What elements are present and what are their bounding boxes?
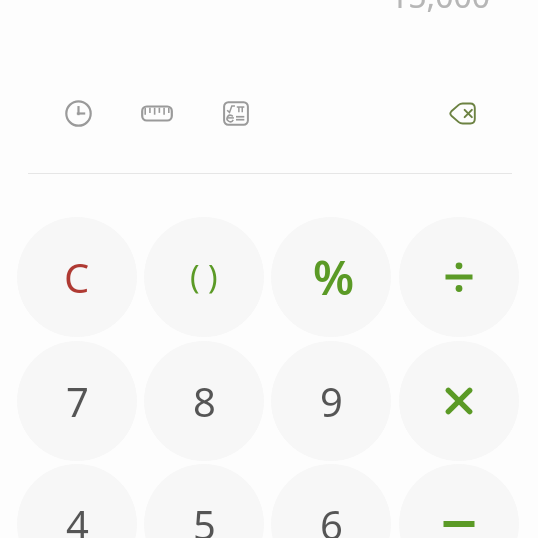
button[interactable]: C <box>17 217 137 337</box>
staticText: % <box>313 245 355 309</box>
button[interactable]: % <box>271 217 391 337</box>
staticText: 9 <box>320 374 343 428</box>
button[interactable] <box>399 217 519 337</box>
button[interactable]: Scientific calculator <box>214 91 258 136</box>
staticText: 8 <box>193 374 216 428</box>
button[interactable]: 5 <box>144 464 264 538</box>
staticText: ( ) <box>190 255 218 299</box>
button[interactable]: ( ) <box>144 217 264 337</box>
button[interactable] <box>399 341 519 461</box>
staticText: C <box>64 250 90 304</box>
button[interactable]: 8 <box>144 341 264 461</box>
staticText: 15,000 <box>390 0 491 18</box>
button[interactable]: Unit converter <box>132 91 182 136</box>
staticText: 6 <box>320 497 343 538</box>
button[interactable]: Backspace <box>439 91 485 136</box>
staticText: 7 <box>66 374 89 428</box>
button[interactable] <box>399 464 519 538</box>
button[interactable]: History <box>56 91 101 136</box>
button[interactable]: 9 <box>271 341 391 461</box>
button[interactable]: 7 <box>17 341 137 461</box>
button[interactable]: 4 <box>17 464 137 538</box>
staticText: 4 <box>66 497 89 538</box>
button[interactable]: 6 <box>271 464 391 538</box>
staticText: 5 <box>193 497 216 538</box>
